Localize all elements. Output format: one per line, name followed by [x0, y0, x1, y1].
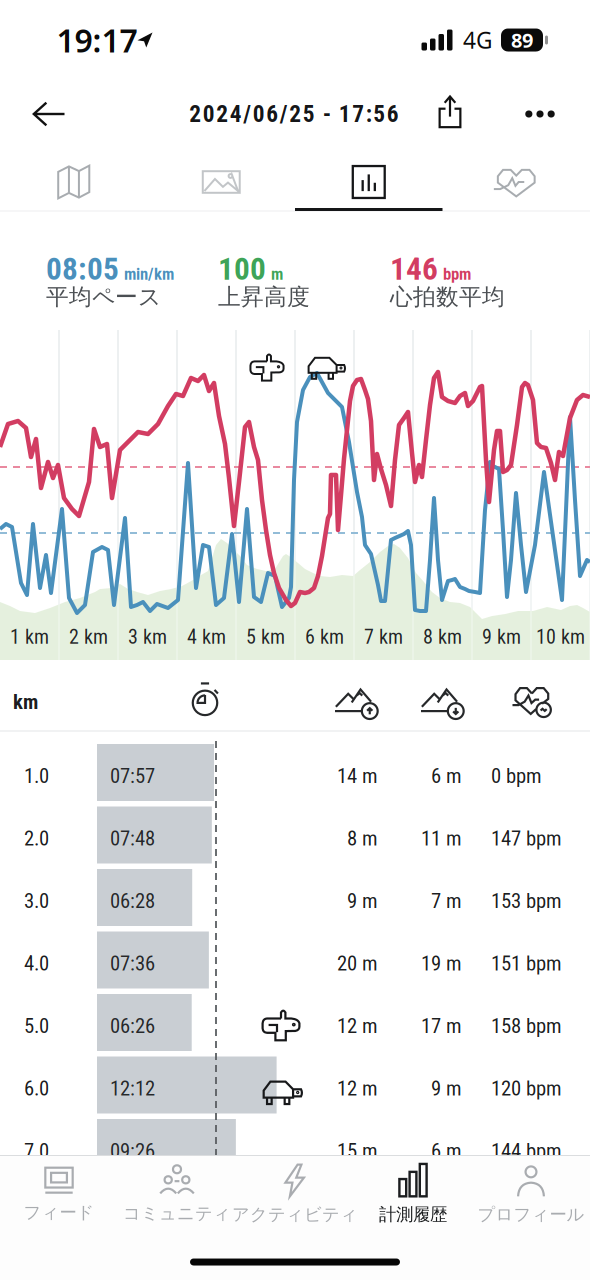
staticText: 9 m — [347, 889, 378, 913]
staticText: 06:28 — [110, 889, 155, 913]
staticText: 120 bpm — [491, 1076, 562, 1101]
staticText: 3 km — [128, 625, 167, 649]
staticText: 6 m — [431, 1139, 462, 1163]
staticText: km — [13, 690, 38, 714]
staticText: 12 m — [337, 1076, 378, 1101]
staticText: コミュニティ — [123, 1203, 231, 1224]
staticText: 100 — [218, 251, 266, 287]
staticText: 心拍数平均 — [390, 283, 505, 311]
staticText: アクティビティ — [232, 1204, 358, 1225]
staticText: プロフィール — [477, 1204, 584, 1225]
staticText: 146 — [390, 251, 438, 287]
staticText: 11 m — [421, 826, 462, 851]
staticText: 89 — [511, 27, 533, 53]
staticText: 12:12 — [110, 1076, 155, 1101]
staticText: 153 bpm — [491, 889, 562, 913]
staticText: 144 bpm — [491, 1139, 562, 1163]
staticText: 7 m — [431, 889, 462, 913]
staticText: 158 bpm — [491, 1014, 562, 1038]
staticText: 8 km — [423, 625, 462, 649]
staticText: 19:17 — [56, 19, 137, 61]
button[interactable]: Map — [43, 150, 104, 213]
staticText: 5.0 — [24, 1014, 49, 1038]
button[interactable]: More — [514, 98, 565, 130]
button[interactable]: Share — [428, 87, 472, 136]
staticText: 6.0 — [24, 1076, 49, 1101]
button[interactable]: 計測履歴 — [354, 1156, 472, 1232]
button[interactable]: Heart rate — [484, 154, 548, 210]
staticText: 19 m — [421, 951, 462, 976]
staticText: 12 m — [337, 1014, 378, 1038]
staticText: 2024/06/25 - 17:56 — [189, 100, 399, 128]
button[interactable]: アクティビティ — [236, 1156, 354, 1232]
staticText: 8 m — [347, 826, 378, 851]
staticText: 6 km — [305, 625, 344, 649]
staticText: 計測履歴 — [379, 1204, 447, 1225]
staticText: 151 bpm — [491, 951, 562, 976]
staticText: 06:26 — [110, 1014, 155, 1038]
staticText: 147 bpm — [491, 826, 562, 851]
button[interactable]: プロフィール — [472, 1156, 590, 1232]
button[interactable]: Photos — [188, 155, 254, 209]
staticText: 7.0 — [24, 1139, 49, 1163]
staticText: 2 km — [69, 625, 108, 649]
button[interactable]: コミュニティ — [118, 1156, 236, 1232]
staticText: 1.0 — [24, 764, 49, 788]
staticText: 10 km — [536, 625, 585, 649]
staticText: m — [271, 264, 283, 284]
staticText: 平均ペース — [46, 283, 161, 311]
staticText: 1 km — [10, 625, 49, 649]
staticText: 上昇高度 — [218, 283, 310, 311]
staticText: 0 bpm — [491, 764, 542, 788]
staticText: 3.0 — [24, 889, 49, 913]
staticText: 6 m — [431, 764, 462, 788]
staticText: 20 m — [337, 951, 378, 976]
staticText: 4 km — [187, 625, 226, 649]
staticText: 07:36 — [110, 951, 155, 976]
staticText: 15 m — [337, 1139, 378, 1163]
staticText: 2.0 — [24, 826, 49, 851]
button[interactable]: フィード — [0, 1156, 118, 1232]
staticText: 9 km — [482, 625, 521, 649]
staticText: 9 m — [431, 1076, 462, 1101]
button[interactable]: Back — [22, 90, 75, 137]
staticText: 08:05 — [46, 251, 119, 287]
staticText: 14 m — [337, 764, 378, 788]
staticText: フィード — [23, 1202, 94, 1223]
staticText: min/km — [124, 264, 174, 284]
staticText: 7 km — [364, 625, 403, 649]
staticText: 4.0 — [24, 951, 49, 976]
staticText: 09:26 — [110, 1139, 155, 1163]
staticText: 4G — [463, 25, 493, 55]
staticText: bpm — [443, 264, 471, 284]
button[interactable]: Charts — [338, 151, 400, 213]
staticText: 5 km — [246, 625, 285, 649]
staticText: 07:48 — [110, 826, 155, 851]
staticText: 17 m — [421, 1014, 462, 1038]
staticText: 07:57 — [110, 764, 155, 788]
